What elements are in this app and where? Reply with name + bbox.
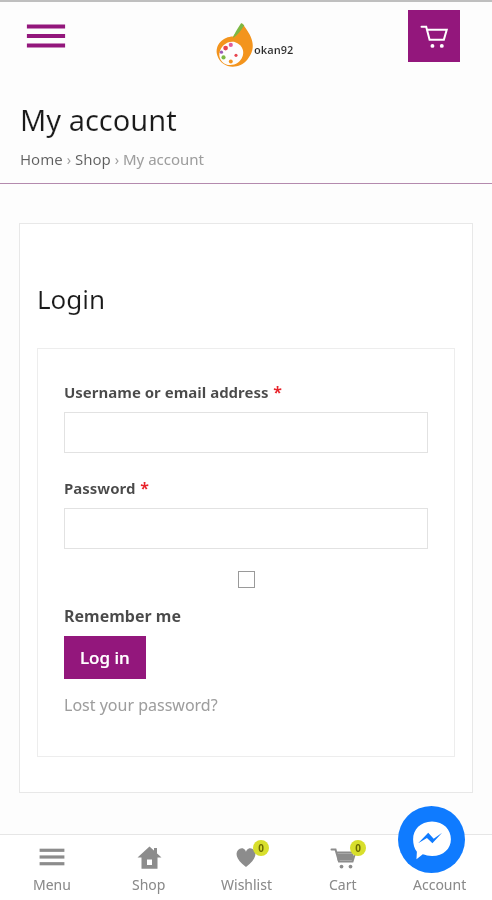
staticText: › [111,150,123,169]
staticText: Password [64,478,136,498]
button[interactable]: Dokan92 home [202,16,306,78]
staticText: Log in [80,646,130,669]
button[interactable]: Shop [75,149,111,169]
staticText: * [136,477,149,499]
button[interactable]: Cart [408,10,460,62]
button[interactable] [64,412,428,453]
staticText: 0 [355,841,361,855]
button[interactable]: Log in [64,636,146,679]
staticText: Shop [132,875,166,894]
button[interactable]: Menu [7,842,97,894]
staticText: 0 [258,841,264,855]
staticText: Wishlist [221,875,272,894]
button[interactable]: 0 [201,842,291,894]
button[interactable]: Account [395,842,485,894]
staticText: Login [37,281,106,316]
staticText: Cart [329,875,357,894]
staticText: My account [20,100,177,139]
button[interactable]: 0 [298,842,388,894]
staticText: okan92 [254,42,294,57]
staticText: * [269,381,282,403]
button[interactable]: Lost your password? [64,694,218,716]
button[interactable]: Remember me [238,571,255,588]
button[interactable] [64,508,428,549]
button[interactable]: Chat on Messenger [398,806,465,873]
button[interactable]: Home [20,149,63,169]
staticText: › [63,150,75,169]
staticText: Remember me [64,605,181,627]
staticText: Username or email address [64,382,269,402]
staticText: My account [123,149,205,169]
staticText: Menu [33,875,71,894]
button[interactable]: Shop [104,842,194,894]
button[interactable]: Menu [20,10,72,62]
staticText: Account [413,875,467,894]
